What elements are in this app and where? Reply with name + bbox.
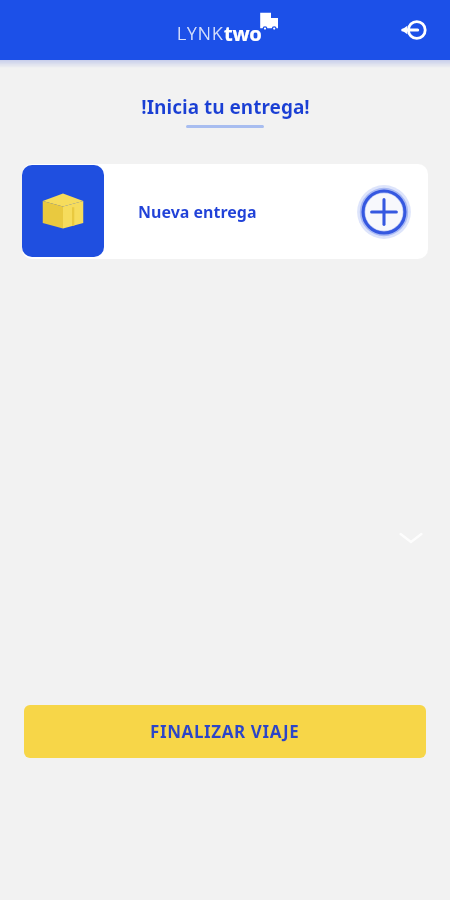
button[interactable]: Agregar entrega xyxy=(356,184,412,240)
staticText: LYNK xyxy=(177,21,224,46)
staticText: two xyxy=(224,20,262,47)
button[interactable]: Cerrar sesión xyxy=(392,8,436,52)
button[interactable]: Nueva entrega xyxy=(22,164,428,260)
staticText: FINALIZAR VIAJE xyxy=(150,720,300,743)
staticText: Nueva entrega xyxy=(138,201,257,223)
button[interactable]: FINALIZAR VIAJE xyxy=(24,705,426,758)
staticText: !Inicia tu entrega! xyxy=(141,94,310,120)
